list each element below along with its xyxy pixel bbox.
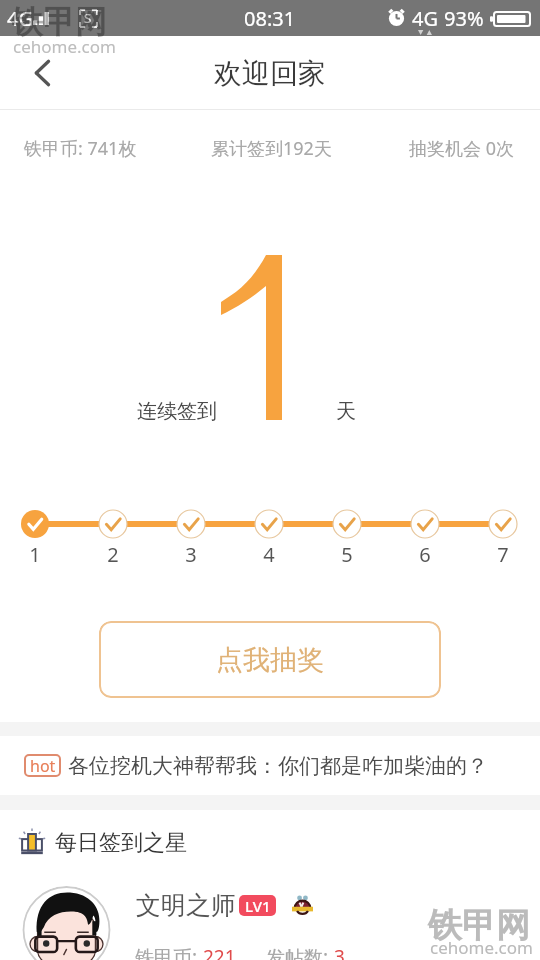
staticText: 5 (322, 541, 372, 568)
staticText: 2 (88, 541, 138, 568)
staticText: LV1 (245, 896, 271, 916)
staticText: 天 (336, 399, 356, 424)
staticText: 3 (166, 541, 216, 568)
staticText: 4G (7, 5, 33, 32)
staticText: 4G (412, 5, 438, 32)
staticText: hot (30, 755, 56, 777)
staticText: 221 (203, 944, 236, 960)
staticText: 抽奖机会 0次 (409, 136, 514, 161)
staticText: 铁甲币: (135, 944, 203, 960)
staticText: 连续签到 (137, 399, 217, 424)
button[interactable]: 文明之师 (0, 872, 540, 960)
staticText: 铁甲网 (428, 904, 530, 947)
staticText: 3 (334, 944, 345, 960)
staticText: 累计签到192天 (211, 136, 332, 161)
staticText: 93% (444, 5, 484, 32)
staticText: 08:31 (244, 5, 296, 32)
staticText: 7 (478, 541, 528, 568)
staticText: 1 (10, 541, 60, 568)
staticText: 发帖数: (266, 944, 334, 960)
button[interactable]: hot (0, 736, 540, 795)
staticText: 4 (244, 541, 294, 568)
staticText: 6 (400, 541, 450, 568)
button[interactable]: Back (14, 44, 72, 102)
button[interactable]: 点我抽奖 (99, 621, 441, 698)
staticText: 文明之师 (136, 890, 236, 921)
staticText: cehome.com (13, 35, 116, 58)
staticText: 点我抽奖 (216, 643, 324, 677)
staticText: 铁甲币: 741枚 (24, 136, 137, 161)
staticText: 每日签到之星 (55, 829, 187, 857)
staticText: cehome.com (430, 936, 533, 959)
staticText: 各位挖机大神帮帮我：你们都是咋加柴油的？ (68, 753, 488, 779)
staticText: 铁甲网 (11, 2, 107, 42)
staticText: S (84, 9, 92, 27)
staticText: 欢迎回家 (214, 56, 326, 91)
